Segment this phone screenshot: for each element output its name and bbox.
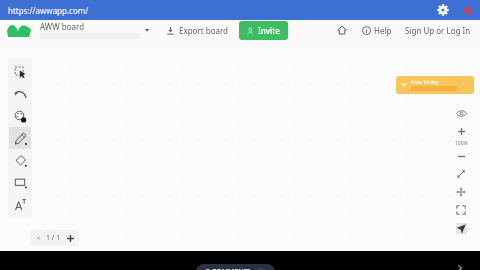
button[interactable]: 0 COMMENTI	[196, 264, 275, 270]
staticText: 100%	[455, 140, 468, 147]
button[interactable]: Home	[332, 20, 352, 40]
staticText: Export board	[179, 25, 229, 36]
button[interactable]: Sign Up or Log In	[402, 21, 474, 40]
button[interactable]: Select	[9, 61, 31, 83]
button[interactable]: Settings	[434, 1, 452, 19]
staticText: 1 / 1	[46, 233, 61, 243]
button[interactable]: Text	[9, 193, 31, 215]
button[interactable]: Next	[452, 260, 468, 270]
staticText: Invite	[258, 25, 280, 36]
button[interactable]: Pan	[452, 183, 470, 201]
button[interactable]: AWW logo	[6, 21, 32, 39]
button[interactable]: Invite	[239, 21, 288, 40]
button[interactable]: Free 14 day	[396, 76, 474, 94]
staticText: Free 14 day	[411, 79, 440, 86]
button[interactable]: Close	[458, 1, 476, 19]
button[interactable]: Previous page	[33, 233, 43, 243]
button[interactable]: Color palette	[9, 105, 31, 127]
button[interactable]: Fit	[452, 165, 470, 183]
button[interactable]: Export board	[164, 21, 231, 40]
button[interactable]: Zoom out	[452, 147, 470, 165]
button[interactable]: Eraser	[9, 149, 31, 171]
button[interactable]: Shape	[9, 171, 31, 193]
staticText: https://awwapp.com/	[8, 5, 89, 16]
staticText: AWW board	[40, 21, 85, 32]
button[interactable]: Visibility	[452, 104, 470, 122]
button[interactable]: Pen	[9, 127, 31, 149]
staticText: Help	[374, 25, 392, 36]
staticText: Sign Up or Log In	[405, 25, 471, 36]
button[interactable]: Help	[360, 21, 394, 40]
button[interactable]: Undo	[9, 83, 31, 105]
button[interactable]: Board menu	[140, 23, 154, 37]
button[interactable]: Laser	[452, 219, 470, 237]
button[interactable]: Frame	[452, 201, 470, 219]
button[interactable]: Zoom in	[452, 122, 470, 140]
staticText: 0 COMMENTI	[206, 267, 251, 270]
button[interactable]: Add page	[64, 232, 76, 244]
